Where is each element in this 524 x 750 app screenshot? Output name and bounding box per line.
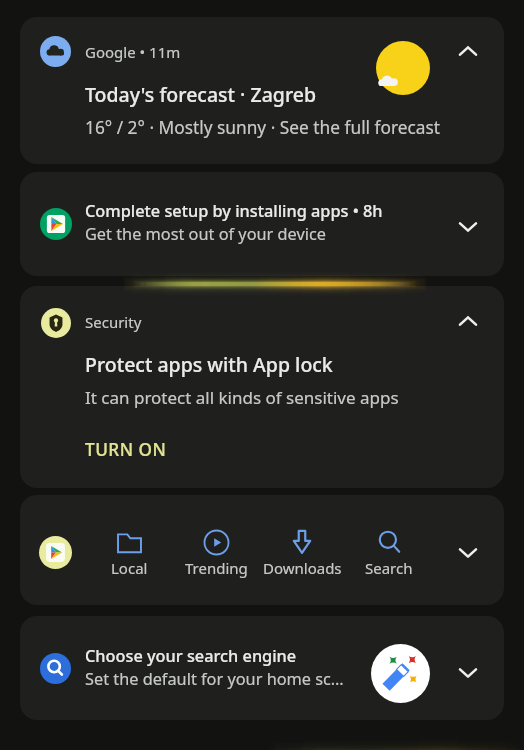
staticText: Protect apps with App lock [85,351,333,378]
staticText: Security [85,312,142,332]
button[interactable]: Collapse [444,27,492,75]
button[interactable]: Expand [444,649,492,697]
staticText: Search [365,558,413,578]
staticText: Get the most out of your device [85,223,326,245]
staticText: Trending [185,558,248,578]
button[interactable]: Search [346,495,432,605]
button[interactable]: Security [20,286,504,488]
button[interactable]: Local [20,495,504,605]
staticText: Downloads [263,558,342,578]
staticText: Local [111,558,148,578]
button[interactable]: Complete setup by installing apps • 8h [20,172,504,276]
staticText: Choose your search engine [85,645,297,667]
button[interactable]: Choose your search engine [20,616,504,720]
staticText: Set the default for your home sc… [85,668,344,690]
staticText: Google • 11m [85,42,181,62]
staticText: Complete setup by installing apps • 8h [85,200,383,222]
button[interactable]: Expand [444,529,492,577]
staticText: 16° / 2° · Mostly sunny · See the full f… [85,116,441,140]
button[interactable]: Trending [173,495,259,605]
button[interactable]: Collapse [444,297,492,345]
button[interactable]: Downloads [259,495,345,605]
staticText: Today's forecast · Zagreb [85,81,317,108]
button[interactable]: TURN ON [75,430,172,463]
staticText: TURN ON [85,438,167,461]
button[interactable]: Local [86,495,172,605]
staticText: It can protect all kinds of sensitive ap… [85,386,399,409]
button[interactable]: Expand [444,203,492,251]
button[interactable]: Google • 11m [20,17,504,164]
